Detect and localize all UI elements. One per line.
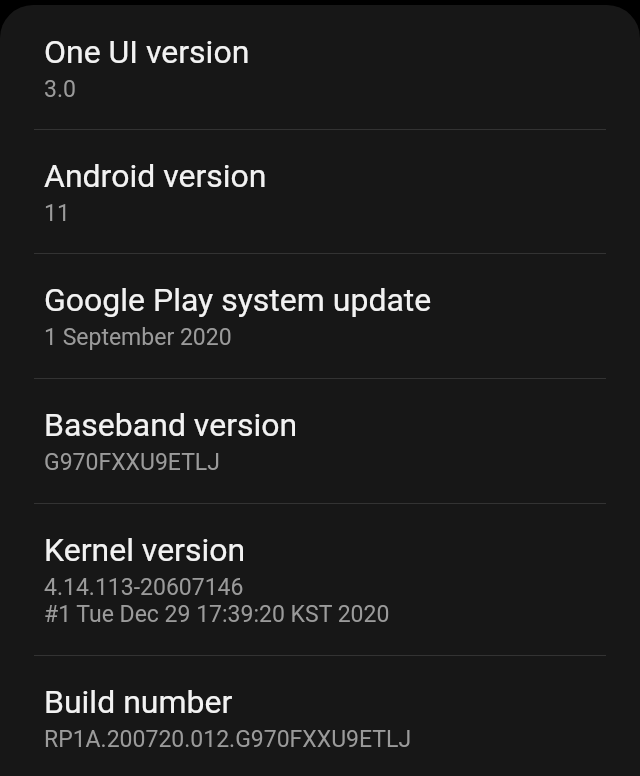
staticText: RP1A.200720.012.G970FXXU9ETLJ <box>44 726 412 753</box>
staticText: Build number <box>44 683 233 721</box>
staticText: G970FXXU9ETLJ <box>44 449 220 476</box>
button[interactable]: Google Play system update <box>0 254 640 378</box>
staticText: Baseband version <box>44 406 298 444</box>
button[interactable]: Baseband version <box>0 379 640 503</box>
button[interactable]: Android version <box>0 130 640 253</box>
staticText: 3.0 <box>44 76 76 103</box>
staticText: One UI version <box>44 33 250 71</box>
staticText: Kernel version <box>44 531 246 569</box>
button[interactable]: Kernel version <box>0 504 640 655</box>
staticText: 4.14.113-20607146 <box>44 574 244 601</box>
staticText: Android version <box>44 157 267 195</box>
button[interactable]: One UI version <box>0 5 640 129</box>
staticText: #1 Tue Dec 29 17:39:20 KST 2020 <box>44 601 390 628</box>
button[interactable]: Build number <box>0 656 640 776</box>
staticText: 1 September 2020 <box>44 324 232 351</box>
staticText: Google Play system update <box>44 281 432 319</box>
staticText: 11 <box>44 200 70 227</box>
